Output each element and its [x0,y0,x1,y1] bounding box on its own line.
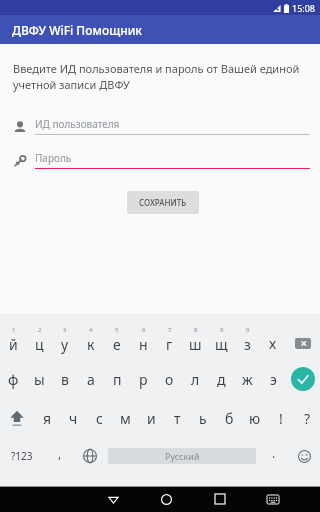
staticText: и [147,409,156,428]
button[interactable]: СОХРАНИТЬ [127,191,199,214]
staticText: 3 [63,326,67,334]
staticText: ?123 [11,449,33,463]
staticText: СОХРАНИТЬ [139,197,187,208]
staticText: ИД пользователя [35,117,120,131]
staticText: 8 [194,326,198,334]
staticText: н [139,335,148,354]
button[interactable]: ж [234,360,260,398]
staticText: ю [249,409,261,428]
staticText: 0 [246,326,250,334]
button[interactable]: 3 [52,320,78,360]
button[interactable]: 1 [0,320,26,360]
button[interactable]: Recents [193,486,246,512]
button[interactable]: Switch keyboard [246,486,299,512]
button[interactable]: б [216,398,242,438]
button[interactable]: . [260,438,288,474]
button[interactable]: 2 [26,320,52,360]
button[interactable]: ч [60,398,86,438]
staticText: р [139,370,148,389]
staticText: щ [215,335,228,354]
staticText: Введите ИД пользователя и пароль от Ваше… [13,61,307,92]
button[interactable]: 0 [234,320,260,360]
staticText: 5 [115,326,119,334]
staticText: 9 [220,326,224,334]
button[interactable]: Emoji [288,438,320,474]
staticText: , [58,445,62,461]
staticText: ц [35,335,44,354]
staticText: л [191,370,200,389]
button[interactable]: ИД пользователя [13,117,310,135]
staticText: ч [69,409,78,428]
button[interactable]: Backspace [286,320,320,360]
staticText: т [174,409,181,428]
staticText: э [270,370,277,389]
button[interactable]: п [104,360,130,398]
button[interactable]: 6 [130,320,156,360]
staticText: я [43,409,52,428]
button[interactable]: в [52,360,78,398]
staticText: ф [8,370,19,389]
button[interactable]: Русский [108,448,256,464]
button[interactable]: 9 [208,320,234,360]
button[interactable]: Change language [76,438,104,474]
staticText: ы [34,370,45,389]
button[interactable]: л [182,360,208,398]
button[interactable]: ?123 [0,438,44,474]
staticText: 4 [89,326,93,334]
staticText: ь [199,409,207,428]
staticText: 15:08 [292,2,316,14]
button[interactable]: ! [268,398,294,438]
button[interactable]: ь [190,398,216,438]
button[interactable]: 5 [104,320,130,360]
button[interactable]: т [164,398,190,438]
staticText: п [113,370,122,389]
button[interactable]: я [34,398,60,438]
button[interactable]: Home [140,486,193,512]
button[interactable]: Пароль [13,151,310,169]
staticText: г [166,335,173,354]
staticText: с [96,409,103,428]
button[interactable]: д [208,360,234,398]
staticText: 1 [12,326,16,334]
button[interactable]: м [112,398,138,438]
staticText: 2 [38,326,42,334]
staticText: а [87,370,95,389]
staticText: . [272,445,276,461]
staticText: з [244,335,251,354]
button[interactable]: с [86,398,112,438]
staticText: х [269,334,277,353]
button[interactable]: э [260,360,286,398]
button[interactable]: , [44,438,76,474]
staticText: ДВФУ WiFi Помощник [12,22,142,38]
button[interactable]: ? [294,398,320,438]
staticText: б [225,409,234,428]
staticText: в [61,370,69,389]
button[interactable]: р [130,360,156,398]
button[interactable]: 7 [156,320,182,360]
staticText: к [87,335,95,354]
button[interactable]: Enter [286,360,320,398]
button[interactable]: 4 [78,320,104,360]
button[interactable]: Shift [0,398,34,438]
button[interactable]: 8 [182,320,208,360]
button[interactable]: ДВФУ WiFi Помощник [0,15,320,44]
button[interactable]: и [138,398,164,438]
staticText: ш [189,335,202,354]
button[interactable]: а [78,360,104,398]
staticText: д [217,370,226,389]
staticText: 7 [168,326,172,334]
staticText: 6 [142,326,146,334]
staticText: Русский [165,450,200,462]
staticText: ? [304,409,311,428]
button[interactable]: ю [242,398,268,438]
staticText: ж [242,370,253,389]
staticText: е [113,335,121,354]
staticText: у [61,335,69,354]
button[interactable]: х [260,320,286,360]
button[interactable]: ф [0,360,26,398]
button[interactable]: ы [26,360,52,398]
staticText: м [120,409,131,428]
button[interactable]: Back [86,486,140,512]
staticText: ! [279,409,283,428]
button[interactable]: о [156,360,182,398]
